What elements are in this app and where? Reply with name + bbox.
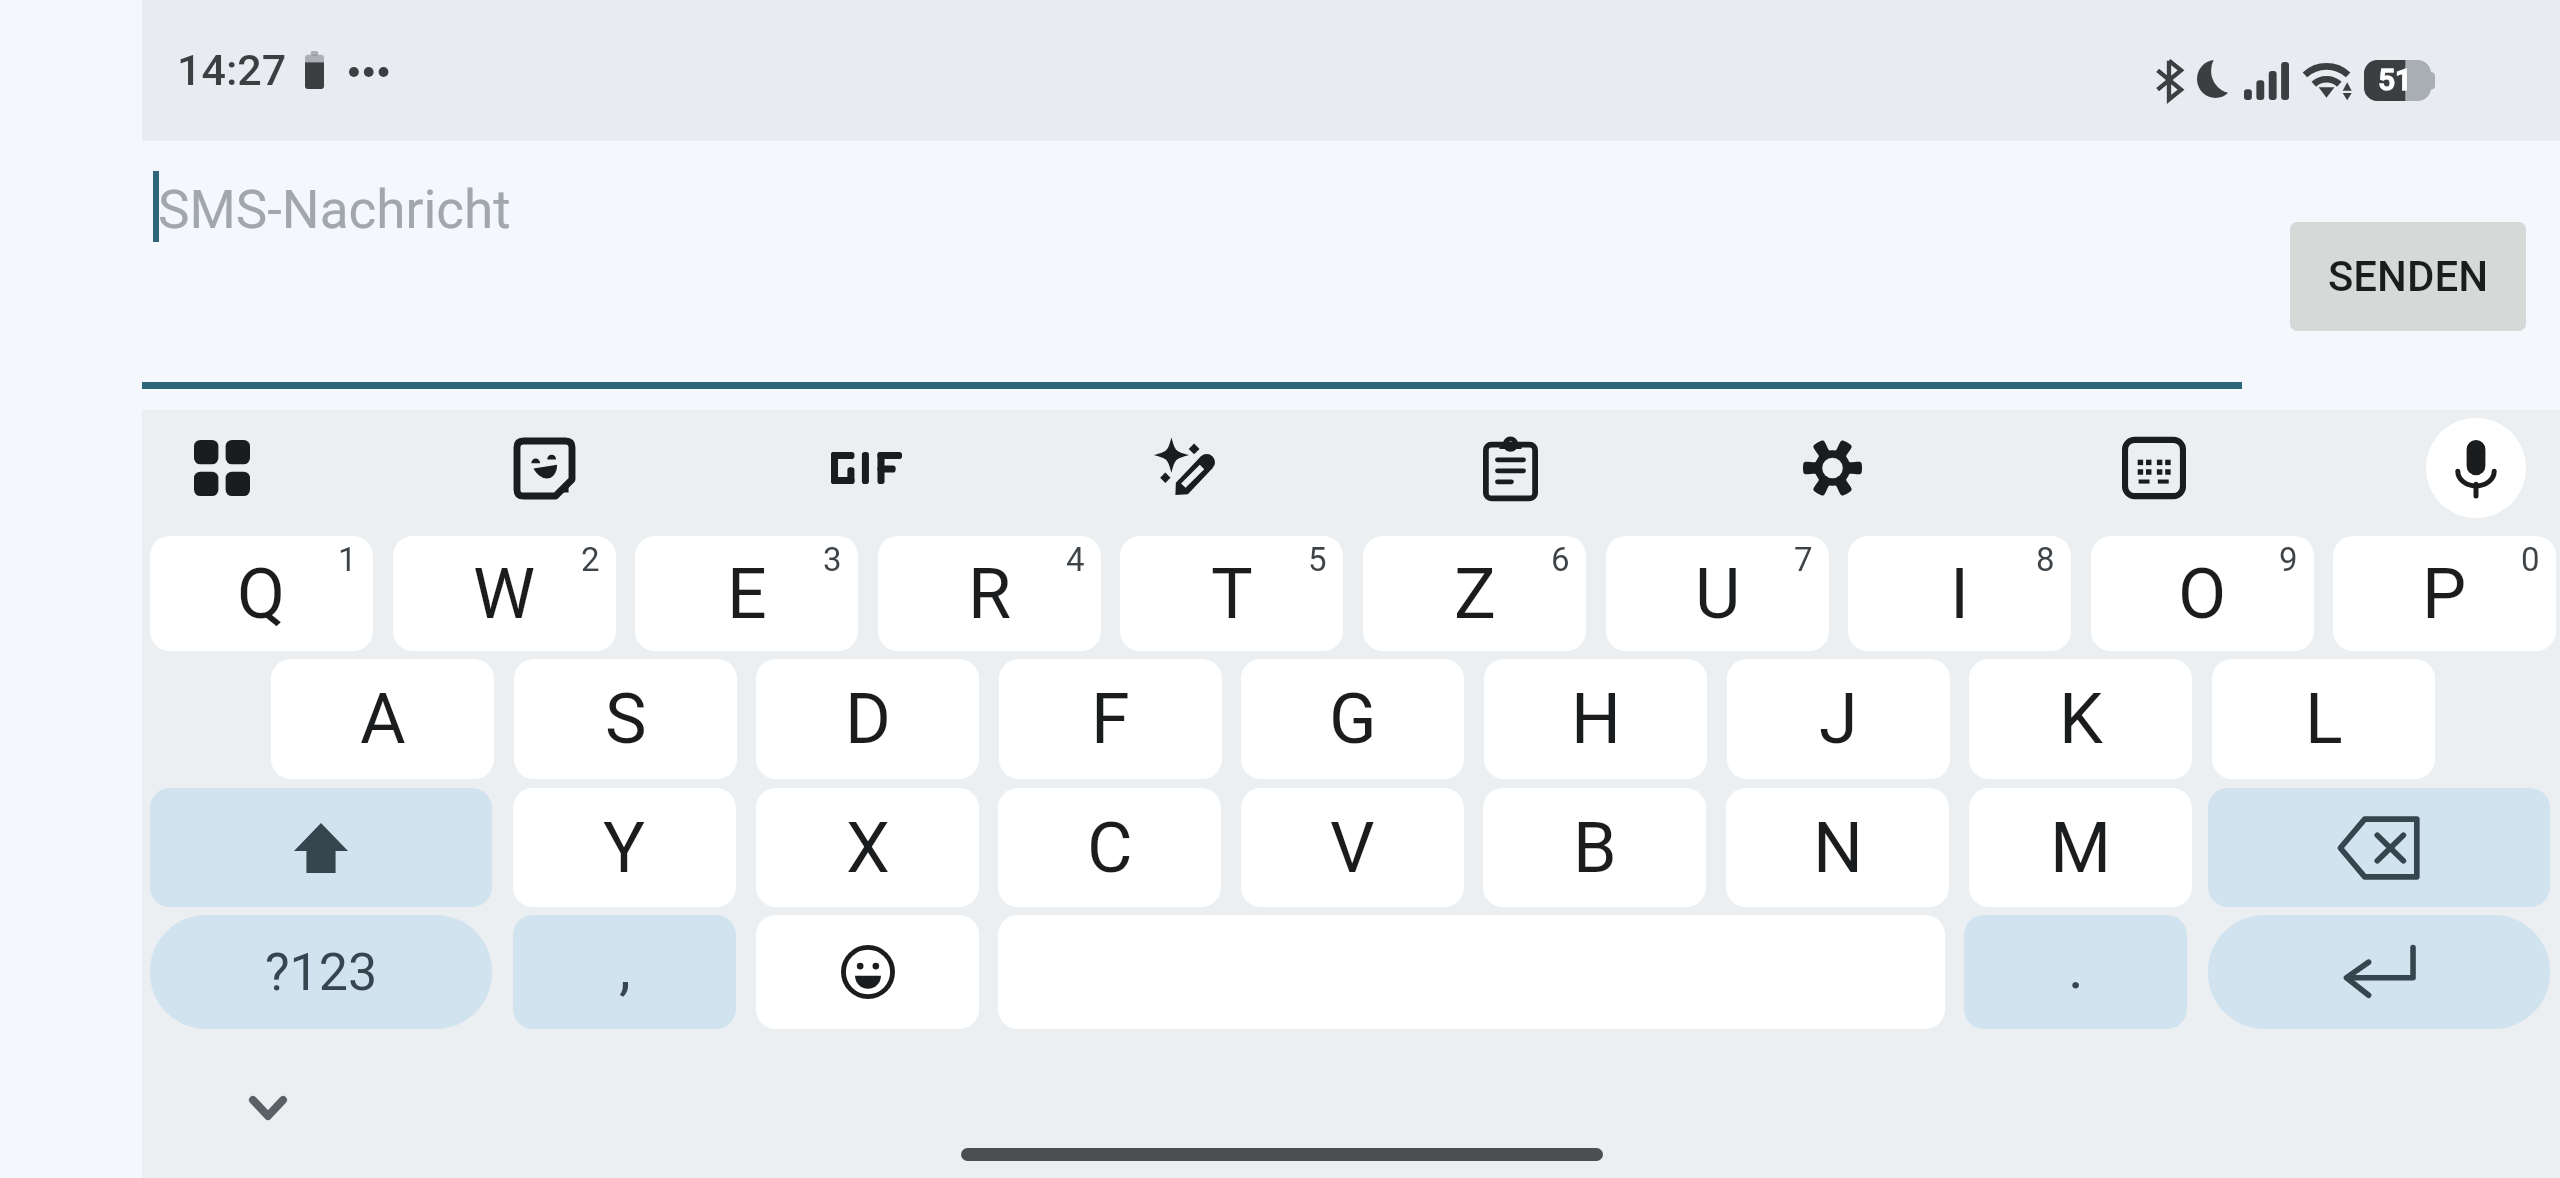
button[interactable]: Emoji [756, 915, 979, 1029]
button[interactable]: SENDEN [2290, 222, 2526, 331]
staticText: 7 [1794, 540, 1813, 579]
button[interactable]: Voice input [2416, 408, 2536, 528]
button[interactable]: F [999, 659, 1222, 779]
staticText: 6 [1551, 540, 1570, 579]
staticText: X [846, 807, 890, 889]
staticText: C [1087, 807, 1133, 889]
staticText: 51 [2378, 62, 2413, 97]
button[interactable]: Z [1363, 536, 1586, 651]
staticText: E [727, 553, 767, 635]
staticText: R [968, 553, 1012, 635]
button[interactable]: C [998, 788, 1221, 907]
button[interactable]: , [513, 915, 736, 1029]
button[interactable]: Y [513, 788, 736, 907]
staticText: ?123 [265, 942, 378, 1003]
staticText: 2 [581, 540, 600, 579]
staticText: P [2422, 553, 2467, 635]
button[interactable]: SMS message input [142, 141, 2242, 410]
button[interactable]: I [1848, 536, 2071, 651]
staticText: L [2305, 678, 2343, 760]
staticText: 4 [1066, 540, 1085, 579]
button[interactable]: K [1969, 659, 2192, 779]
staticText: A [360, 678, 406, 760]
button[interactable]: R [878, 536, 1101, 651]
staticText: U [1695, 553, 1741, 635]
staticText: Y [603, 807, 646, 889]
button[interactable]: T [1120, 536, 1343, 651]
staticText: 3 [823, 540, 842, 579]
button[interactable]: H [1484, 659, 1707, 779]
staticText: K [2059, 678, 2103, 760]
button[interactable]: V [1241, 788, 1464, 907]
button[interactable]: Shift [150, 788, 492, 907]
button[interactable]: Stickers [484, 408, 604, 528]
staticText: D [845, 678, 891, 760]
button[interactable]: A [271, 659, 494, 779]
staticText: SMS-Nachricht [158, 179, 511, 241]
button[interactable]: U [1606, 536, 1829, 651]
staticText: O [2178, 553, 2227, 635]
staticText: W [473, 553, 536, 635]
button[interactable]: Q [150, 536, 373, 651]
button[interactable]: Settings [1772, 408, 1892, 528]
staticText: F [1091, 678, 1130, 760]
button[interactable]: Backspace [2208, 788, 2550, 907]
staticText: . [2068, 932, 2084, 1002]
button[interactable]: Enter [2208, 915, 2550, 1029]
button[interactable]: ?123 [150, 915, 492, 1029]
button[interactable]: . [1964, 915, 2187, 1029]
staticText: 5 [1308, 540, 1327, 579]
staticText: 14:27 [177, 45, 287, 95]
staticText: T [1211, 553, 1253, 635]
staticText: 1 [338, 540, 357, 579]
staticText: B [1573, 807, 1617, 889]
button[interactable]: N [1726, 788, 1949, 907]
button[interactable]: Text editing [1128, 408, 1248, 528]
button[interactable]: P [2333, 536, 2556, 651]
button[interactable]: GIF [806, 408, 926, 528]
button[interactable]: G [1241, 659, 1464, 779]
button[interactable]: One handed mode [2094, 408, 2214, 528]
button[interactable]: S [514, 659, 737, 779]
staticText: 0 [2521, 540, 2540, 579]
staticText: M [2050, 807, 2112, 889]
staticText: G [1329, 678, 1377, 760]
staticText: , [619, 932, 631, 1002]
staticText: V [1330, 807, 1375, 889]
button[interactable]: O [2091, 536, 2314, 651]
staticText: Z [1454, 553, 1496, 635]
button[interactable]: Apps [162, 408, 282, 528]
staticText: SENDEN [2328, 252, 2488, 301]
button[interactable]: J [1727, 659, 1950, 779]
button[interactable]: D [756, 659, 979, 779]
button[interactable]: Clipboard [1450, 408, 1570, 528]
staticText: N [1813, 807, 1863, 889]
button[interactable]: X [756, 788, 979, 907]
button[interactable]: L [2212, 659, 2435, 779]
staticText: S [605, 678, 647, 760]
staticText: J [1819, 678, 1858, 760]
button[interactable]: E [635, 536, 858, 651]
staticText: Q [237, 553, 286, 635]
staticText: 8 [2036, 540, 2055, 579]
staticText: I [1950, 553, 1970, 635]
staticText: 9 [2279, 540, 2298, 579]
button[interactable]: W [393, 536, 616, 651]
button[interactable]: M [1969, 788, 2192, 907]
staticText: H [1571, 678, 1621, 760]
button[interactable]: Hide keyboard [228, 1068, 308, 1148]
button[interactable]: B [1483, 788, 1706, 907]
